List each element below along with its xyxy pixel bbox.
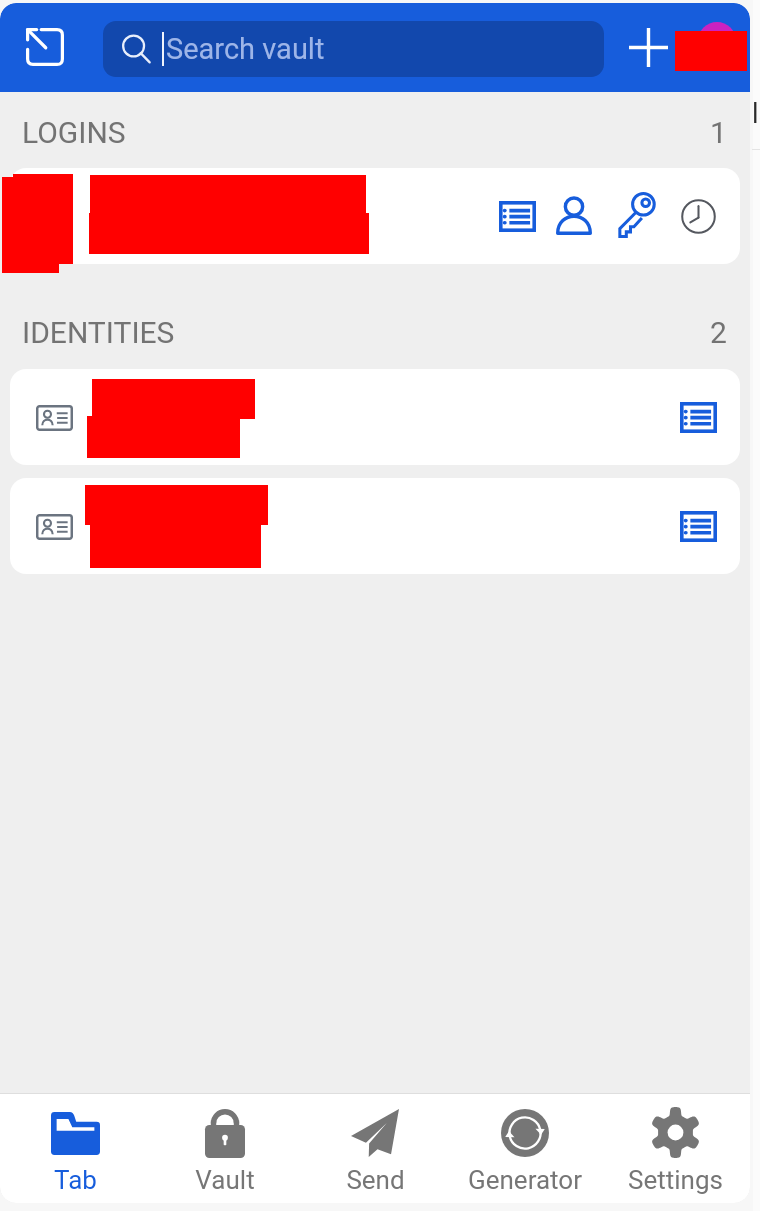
button[interactable]: Vault bbox=[150, 1093, 300, 1203]
button[interactable]: Settings bbox=[600, 1093, 750, 1203]
staticText: LOGINS bbox=[22, 115, 126, 150]
staticText: 1 bbox=[710, 115, 727, 150]
button[interactable]: Open in full screen bbox=[17, 19, 73, 75]
staticText: Tab bbox=[54, 1165, 97, 1195]
button[interactable]: Identity bbox=[26, 389, 83, 446]
button[interactable]: Copy password bbox=[607, 187, 665, 245]
staticText: Send bbox=[346, 1165, 405, 1195]
button[interactable] bbox=[10, 369, 740, 465]
button[interactable]: Copy TOTP bbox=[669, 187, 727, 245]
button[interactable]: Account bbox=[698, 22, 736, 60]
button[interactable] bbox=[10, 478, 740, 574]
button[interactable]: Identity bbox=[26, 498, 83, 555]
button[interactable]: Copy username bbox=[545, 187, 603, 245]
staticText: Vault bbox=[195, 1165, 255, 1195]
button[interactable]: Copy notes bbox=[488, 187, 546, 245]
staticText: Search vault bbox=[166, 32, 325, 66]
staticText: IDENTITIES bbox=[22, 315, 175, 350]
staticText: 2 bbox=[710, 315, 727, 350]
button[interactable]: Add item bbox=[620, 19, 676, 75]
button[interactable]: Send bbox=[300, 1093, 450, 1203]
staticText: Generator bbox=[468, 1165, 582, 1195]
button[interactable]: Options bbox=[669, 497, 727, 555]
button[interactable]: Options bbox=[669, 388, 727, 446]
button[interactable]: Search vault bbox=[103, 21, 604, 77]
staticText: label bbox=[752, 98, 760, 132]
button[interactable] bbox=[10, 168, 740, 264]
button[interactable]: Generator bbox=[450, 1093, 600, 1203]
staticText: Settings bbox=[628, 1165, 723, 1195]
button[interactable]: Tab bbox=[0, 1093, 150, 1203]
